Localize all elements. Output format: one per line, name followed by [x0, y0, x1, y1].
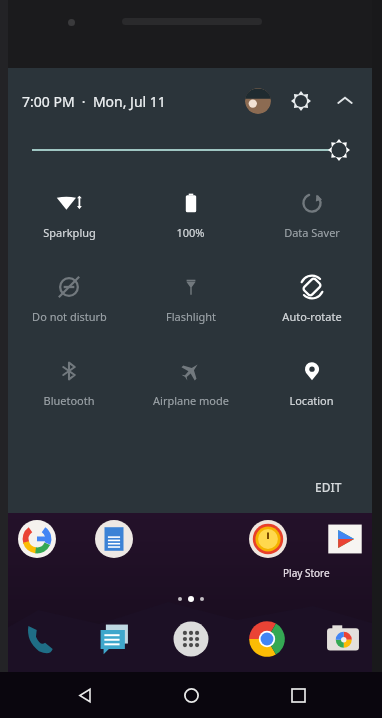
staticText: Flashlight	[166, 309, 216, 324]
button[interactable]: Recent apps	[276, 673, 320, 717]
button[interactable]: App	[322, 516, 368, 562]
button[interactable]: Back	[63, 673, 107, 717]
staticText: Bluetooth	[43, 393, 95, 408]
button[interactable]: Location	[251, 352, 372, 412]
button[interactable]: App	[168, 616, 214, 662]
button[interactable]: Sparkplug	[8, 184, 130, 244]
staticText: Play Store	[283, 566, 330, 580]
button[interactable]: EDIT	[309, 475, 348, 499]
staticText: EDIT	[315, 479, 342, 495]
button[interactable]: Do not disturb	[8, 268, 130, 328]
button[interactable]: Airplane mode	[130, 352, 251, 412]
button[interactable]: App	[16, 616, 62, 662]
button[interactable]: 100%	[130, 184, 251, 244]
button[interactable]: App	[245, 516, 291, 562]
button[interactable]: Home	[169, 673, 213, 717]
button[interactable]: App	[244, 616, 290, 662]
staticText: Auto-rotate	[282, 309, 342, 324]
staticText: 7:00 PM · Mon, Jul 11	[22, 92, 166, 111]
staticText: Airplane mode	[153, 393, 229, 408]
button[interactable]: App	[320, 616, 366, 662]
button[interactable]: Collapse	[332, 88, 358, 114]
staticText: Data Saver	[284, 225, 340, 240]
button[interactable]: Settings	[288, 88, 314, 114]
button[interactable]: Bluetooth	[8, 352, 130, 412]
button[interactable]: App	[92, 616, 138, 662]
button[interactable]: User account	[245, 88, 271, 114]
staticText: Location	[289, 393, 334, 408]
button[interactable]: App	[14, 516, 60, 562]
button[interactable]: Data Saver	[251, 184, 372, 244]
staticText: Do not disturb	[32, 309, 107, 324]
staticText: 100%	[176, 225, 205, 240]
button[interactable]: Flashlight	[130, 268, 251, 328]
button[interactable]: App	[91, 516, 137, 562]
button[interactable]: Brightness	[32, 134, 350, 166]
staticText: Sparkplug	[43, 225, 96, 240]
button[interactable]: Auto-rotate	[251, 268, 372, 328]
